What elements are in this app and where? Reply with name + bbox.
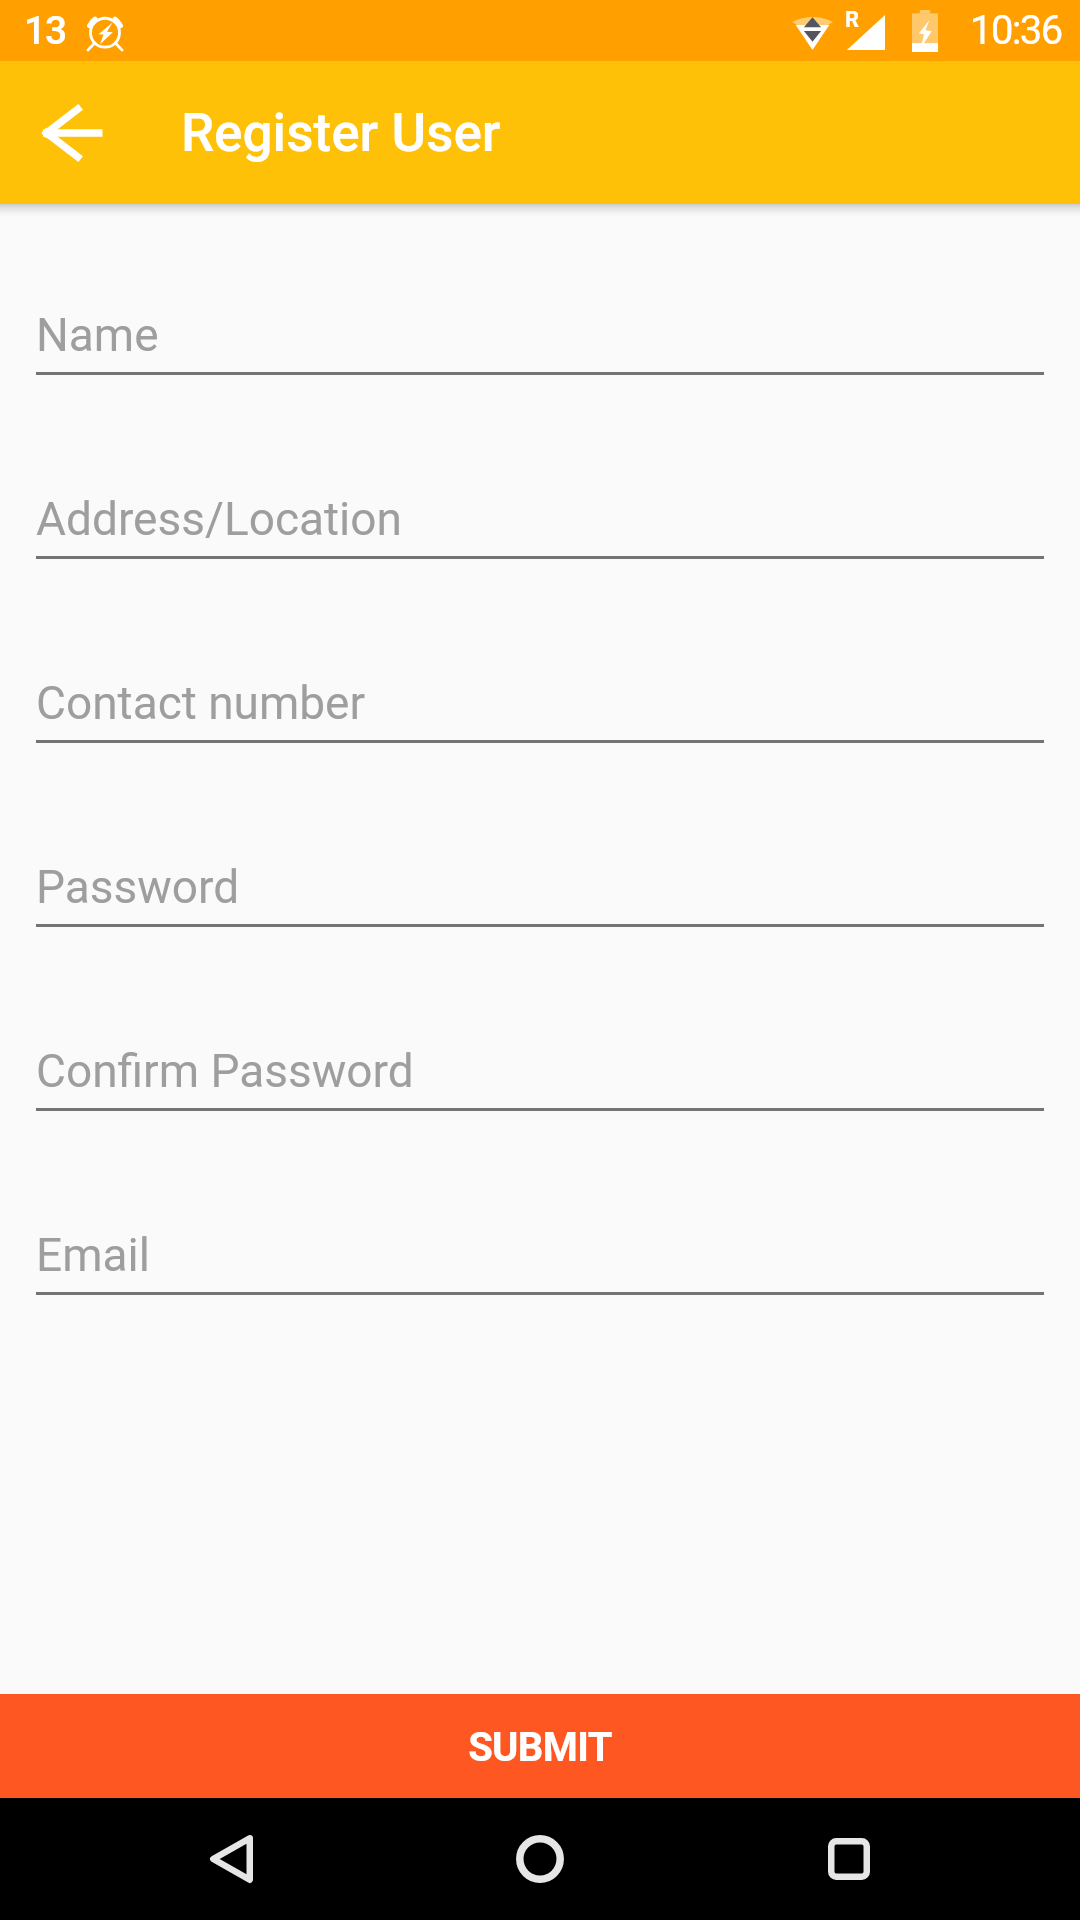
staticText: Contact number (36, 676, 366, 730)
button[interactable]: Contact number (36, 658, 1044, 743)
staticText: 10:36 (970, 7, 1062, 54)
staticText: Password (36, 860, 240, 914)
staticText: Register User (181, 102, 501, 164)
staticText: Name (36, 308, 159, 362)
button[interactable]: Back (171, 1799, 291, 1919)
staticText: 13 (24, 8, 66, 54)
button[interactable]: Name (36, 290, 1044, 375)
button[interactable]: Recent apps (789, 1799, 909, 1919)
button[interactable]: Back (22, 83, 122, 183)
button[interactable]: Address/Location (36, 474, 1044, 559)
staticText: Email (36, 1228, 150, 1282)
button[interactable]: Email (36, 1210, 1044, 1295)
staticText: Address/Location (36, 492, 402, 546)
button[interactable]: Home (480, 1799, 600, 1919)
button[interactable]: SUBMIT (0, 1694, 1080, 1798)
staticText: R (845, 7, 860, 33)
button[interactable]: Confirm Password (36, 1026, 1044, 1111)
button[interactable]: Password (36, 842, 1044, 927)
staticText: SUBMIT (468, 1724, 612, 1771)
staticText: Confirm Password (36, 1044, 414, 1098)
